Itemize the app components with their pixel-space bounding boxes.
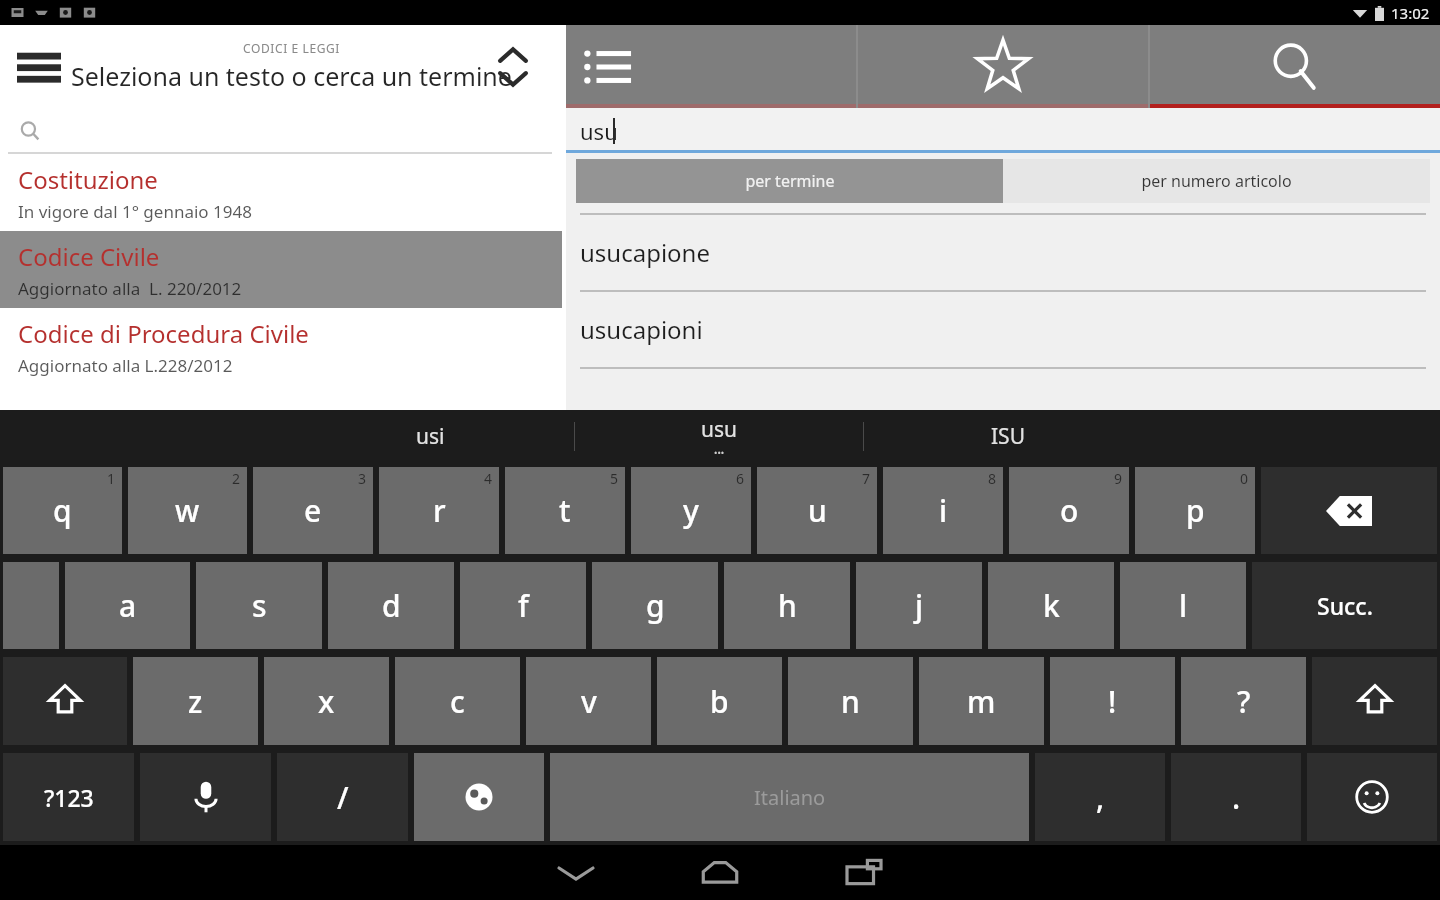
staticText: Seleziona un testo o cerca un termine (71, 59, 512, 93)
staticText: h (778, 585, 797, 626)
staticText: usu (580, 116, 618, 146)
staticText: c (450, 681, 465, 722)
button[interactable]: usucapioni (566, 290, 1440, 367)
staticText: / (337, 777, 349, 818)
button[interactable]: per termine (576, 159, 1003, 203)
staticText: m (967, 681, 996, 722)
button[interactable]: Shift (3, 657, 127, 745)
staticText: y (683, 490, 699, 531)
button[interactable]: usucapione (566, 213, 1440, 290)
staticText: s (252, 585, 267, 626)
button[interactable]: u (757, 467, 877, 554)
button[interactable]: Succ. (1252, 562, 1437, 649)
staticText: usi (416, 422, 445, 451)
button[interactable]: usu (566, 108, 1440, 153)
button[interactable]: y (631, 467, 751, 554)
button[interactable]: / (277, 753, 408, 841)
button[interactable]: Indice (566, 25, 856, 108)
button[interactable]: Indietro (526, 848, 626, 898)
button[interactable]: c (395, 657, 520, 745)
button[interactable]: p (1135, 467, 1255, 554)
staticText: 8 (988, 469, 997, 488)
button[interactable]: j (856, 562, 982, 649)
button[interactable]: ? (1181, 657, 1306, 745)
staticText: r (433, 490, 446, 531)
button[interactable]: Voce (140, 753, 271, 841)
button[interactable]: ! (1050, 657, 1175, 745)
staticText: e (304, 490, 322, 531)
staticText: g (646, 585, 665, 626)
button[interactable]: Cerca (1150, 25, 1440, 108)
button[interactable]: Italiano (550, 753, 1029, 841)
button[interactable]: e (253, 467, 373, 554)
button[interactable]: x (264, 657, 389, 745)
staticText: n (841, 681, 860, 722)
button[interactable]: . (1171, 753, 1301, 841)
staticText: per numero articolo (1141, 170, 1292, 192)
button[interactable] (0, 108, 562, 154)
staticText: 6 (736, 469, 745, 488)
button[interactable]: Codice di Procedura Civile (0, 308, 562, 385)
staticText: u (808, 490, 827, 531)
button[interactable]: Recenti (814, 848, 914, 898)
button[interactable]: Emoji (1307, 753, 1437, 841)
staticText: p (1186, 490, 1205, 531)
button[interactable]: f (460, 562, 586, 649)
staticText: v (581, 681, 597, 722)
staticText: In vigore dal 1° gennaio 1948 (18, 200, 252, 223)
staticText: ?123 (44, 782, 94, 813)
button[interactable]: , (1035, 753, 1165, 841)
button[interactable]: usi (287, 410, 574, 463)
button[interactable]: Shift (1312, 657, 1437, 745)
staticText: q (53, 490, 72, 531)
button[interactable]: r (379, 467, 499, 554)
button[interactable]: s (196, 562, 322, 649)
staticText: usu (701, 415, 738, 444)
staticText: l (1179, 585, 1188, 626)
button[interactable]: Preferiti (858, 25, 1148, 108)
button[interactable]: Codice Civile (0, 231, 562, 308)
staticText: 1 (107, 469, 116, 488)
staticText: 13:02 (1391, 3, 1430, 23)
button[interactable]: Menu (16, 44, 62, 90)
button[interactable]: m (919, 657, 1044, 745)
button[interactable]: per numero articolo (1003, 159, 1430, 203)
button[interactable]: Lingua (414, 753, 544, 841)
button[interactable]: b (657, 657, 782, 745)
button[interactable]: Home (670, 848, 770, 898)
staticText: ? (1237, 681, 1251, 722)
button[interactable]: d (328, 562, 454, 649)
staticText: ISU (991, 422, 1025, 451)
staticText: ••• (714, 446, 725, 458)
button[interactable]: a (65, 562, 190, 649)
staticText: i (939, 490, 948, 531)
staticText: usucapione (580, 236, 710, 269)
button[interactable]: Espandi (490, 44, 536, 90)
button[interactable]: l (1120, 562, 1246, 649)
button[interactable]: usu (575, 410, 863, 463)
button[interactable]: n (788, 657, 913, 745)
staticText: , (1096, 777, 1105, 818)
button[interactable]: ?123 (3, 753, 134, 841)
button[interactable]: h (724, 562, 850, 649)
button[interactable]: Costituzione (0, 154, 562, 231)
staticText: Codice Civile (18, 240, 160, 273)
button[interactable]: k (988, 562, 1114, 649)
staticText: Succ. (1317, 590, 1373, 621)
staticText: 5 (610, 469, 619, 488)
button[interactable]: ISU (864, 410, 1152, 463)
button[interactable]: t (505, 467, 625, 554)
button[interactable]: g (592, 562, 718, 649)
staticText: j (915, 585, 924, 626)
button[interactable]: z (133, 657, 258, 745)
staticText: x (318, 681, 335, 722)
button[interactable]: v (526, 657, 651, 745)
staticText: f (518, 585, 529, 626)
staticText: o (1060, 490, 1079, 531)
button[interactable]: i (883, 467, 1003, 554)
button[interactable]: q (3, 467, 122, 554)
button[interactable]: Backspace (1261, 467, 1437, 554)
button[interactable]: w (128, 467, 247, 554)
staticText: per termine (745, 170, 835, 192)
button[interactable]: o (1009, 467, 1129, 554)
